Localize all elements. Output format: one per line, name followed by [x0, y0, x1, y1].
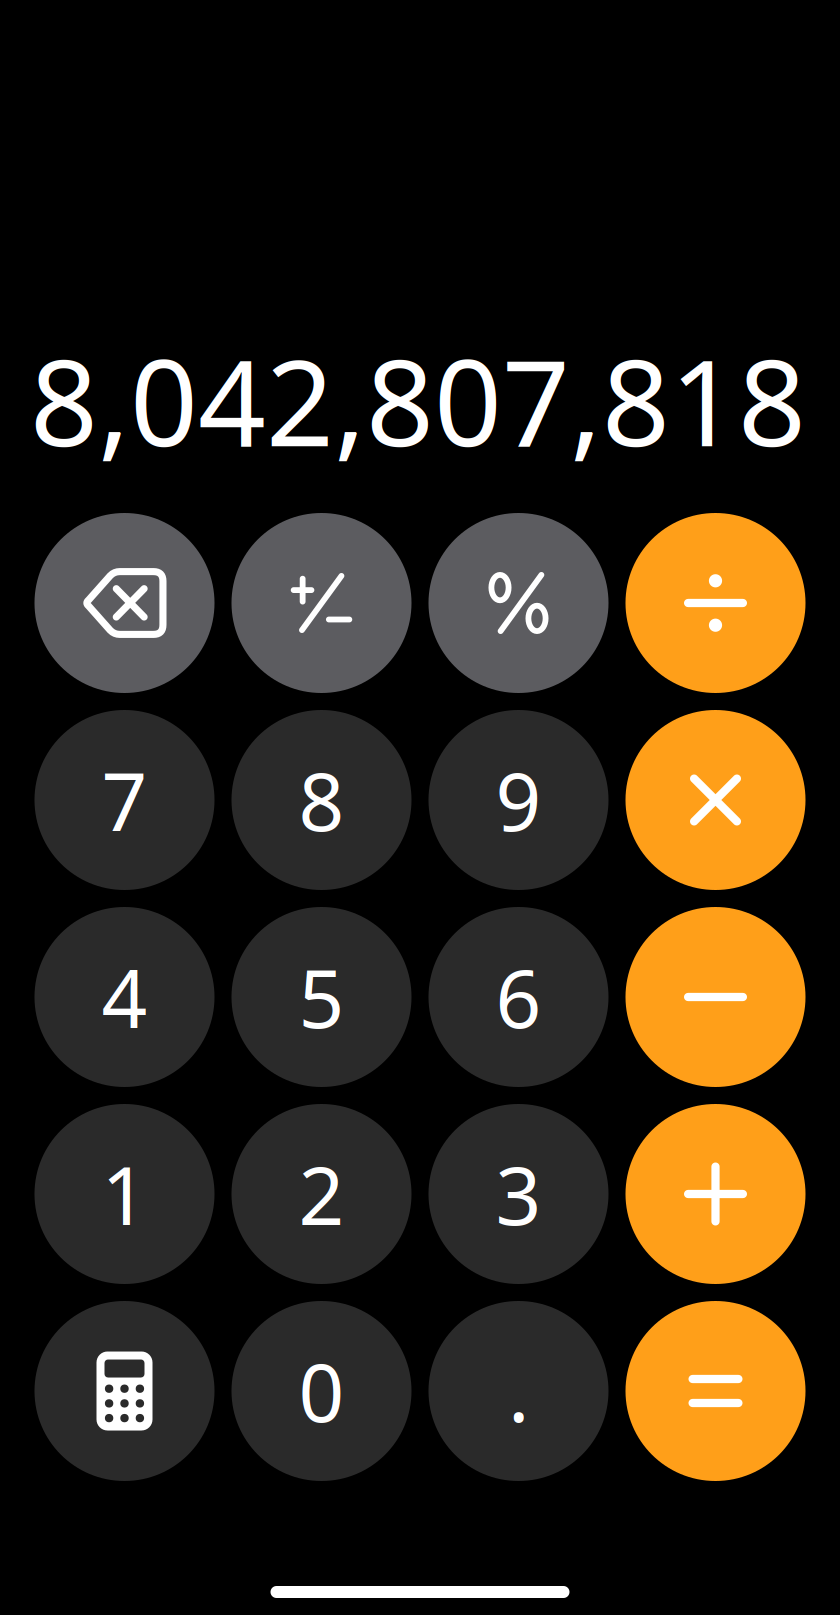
staticText: 7 — [101, 747, 147, 853]
button[interactable]: 7 — [34, 710, 214, 890]
staticText: 5 — [298, 944, 344, 1050]
button[interactable]: 8 — [231, 710, 411, 890]
staticText: 4 — [101, 944, 147, 1050]
button[interactable]: Minus — [625, 907, 805, 1087]
staticText: 2 — [298, 1141, 344, 1247]
button[interactable]: Divide — [625, 513, 805, 693]
staticText: 1 — [101, 1141, 147, 1247]
button[interactable]: . — [428, 1301, 608, 1481]
button[interactable]: Multiply — [625, 710, 805, 890]
button[interactable]: 6 — [428, 907, 608, 1087]
button[interactable]: 9 — [428, 710, 608, 890]
staticText: 9 — [495, 747, 541, 853]
button[interactable]: 2 — [231, 1104, 411, 1284]
button[interactable]: Equals — [625, 1301, 805, 1481]
button[interactable]: 0 — [231, 1301, 411, 1481]
staticText: 8,042,807,818 — [30, 321, 806, 479]
staticText: 8 — [298, 747, 344, 853]
button[interactable]: Calculator — [34, 1301, 214, 1481]
button[interactable]: Delete — [34, 513, 214, 693]
button[interactable]: Plus minus — [231, 513, 411, 693]
button[interactable]: Plus — [625, 1104, 805, 1284]
staticText: 3 — [495, 1141, 541, 1247]
staticText: 6 — [495, 944, 541, 1050]
button[interactable]: 3 — [428, 1104, 608, 1284]
button[interactable]: Percent — [428, 513, 608, 693]
staticText: . — [508, 1338, 529, 1444]
button[interactable]: 1 — [34, 1104, 214, 1284]
button[interactable]: 4 — [34, 907, 214, 1087]
staticText: 0 — [298, 1338, 344, 1444]
button[interactable]: 5 — [231, 907, 411, 1087]
